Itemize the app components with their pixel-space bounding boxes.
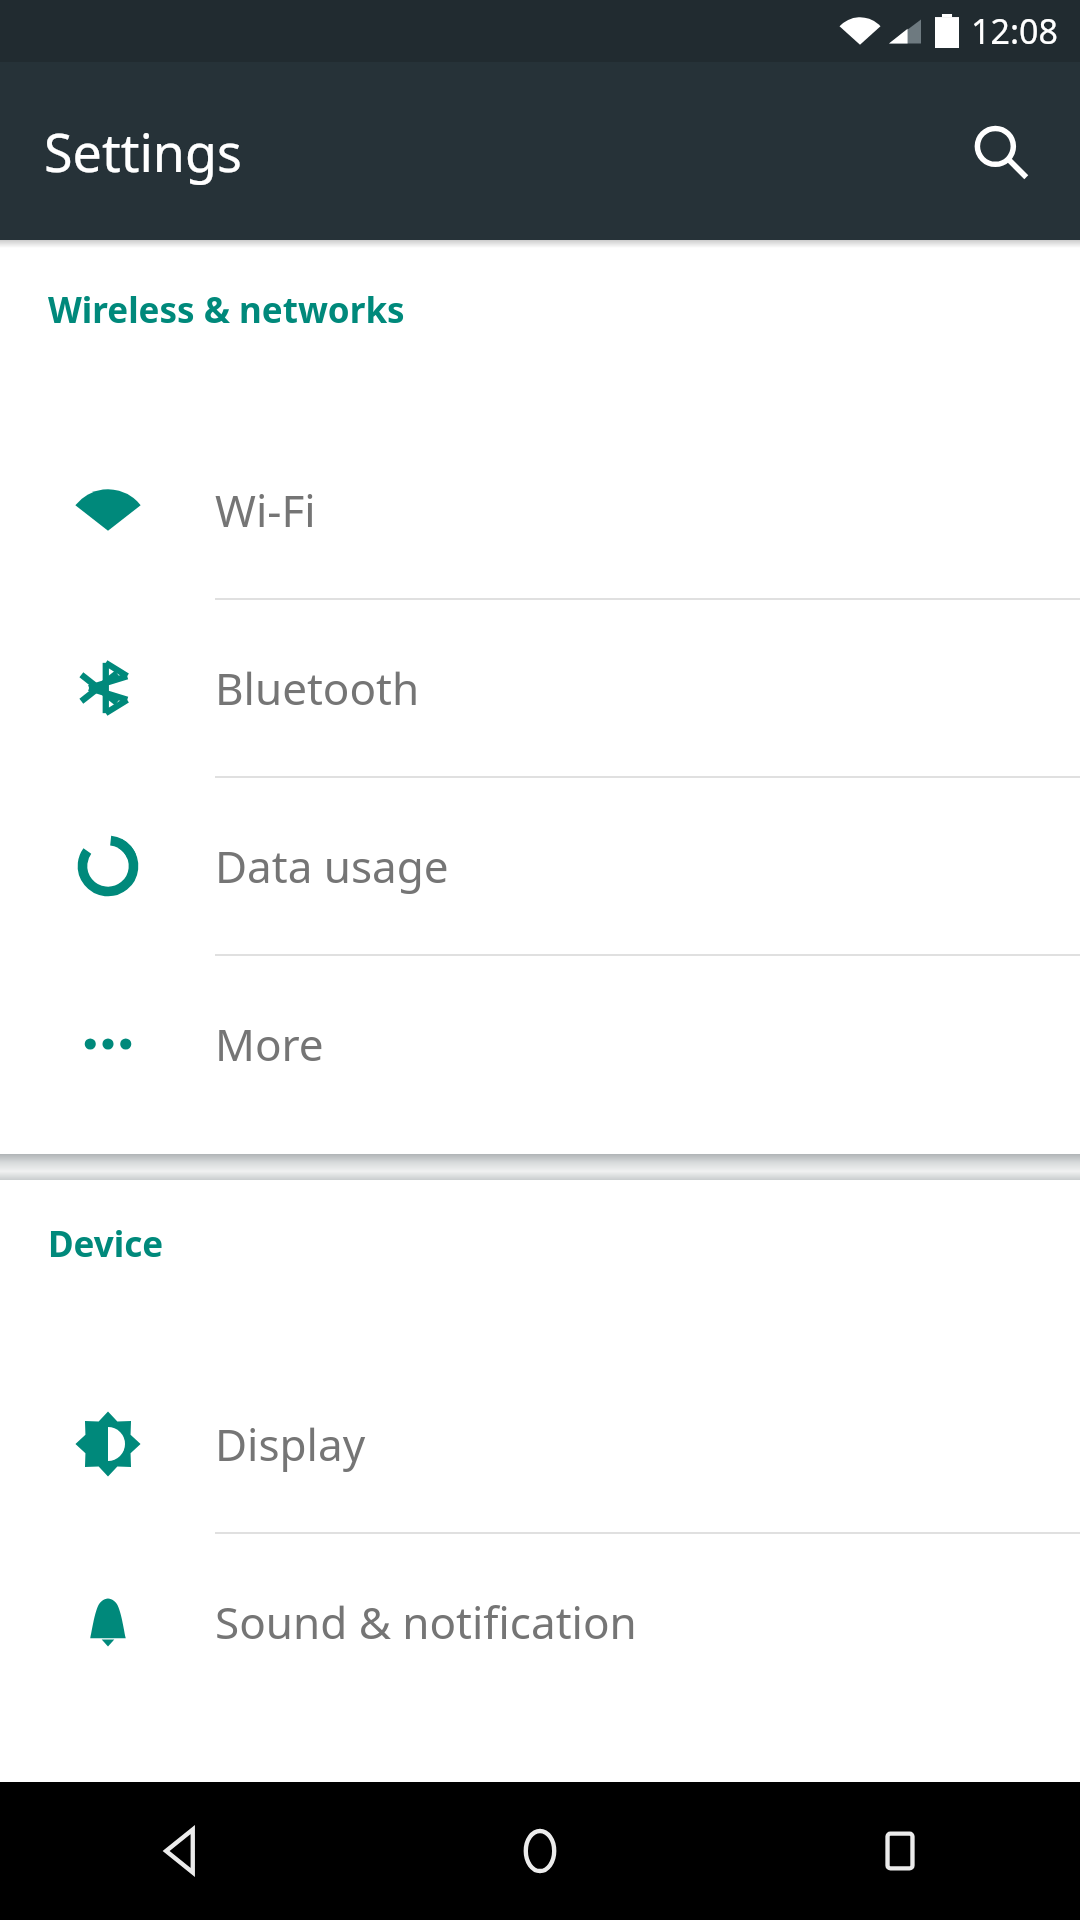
staticText: Display (215, 1414, 366, 1474)
staticText: More (215, 1014, 324, 1074)
staticText: Settings (44, 116, 242, 187)
button[interactable]: Sound & notification (0, 1534, 1080, 1710)
button[interactable]: Wi-Fi (0, 422, 1080, 598)
button[interactable]: Back (0, 1782, 360, 1920)
button[interactable]: Home (360, 1782, 720, 1920)
button[interactable]: Display (0, 1356, 1080, 1532)
staticText: Wireless & networks (48, 286, 405, 334)
button[interactable]: Data usage (0, 778, 1080, 954)
staticText: Data usage (215, 836, 449, 896)
staticText: 12:08 (971, 8, 1058, 54)
button[interactable]: Bluetooth (0, 600, 1080, 776)
staticText: Wi-Fi (215, 480, 316, 540)
staticText: Device (48, 1220, 164, 1268)
staticText: Sound & notification (215, 1592, 637, 1652)
button[interactable]: Search (952, 103, 1048, 199)
staticText: Bluetooth (215, 658, 420, 718)
button[interactable]: More (0, 956, 1080, 1132)
button[interactable]: Recents (720, 1782, 1080, 1920)
